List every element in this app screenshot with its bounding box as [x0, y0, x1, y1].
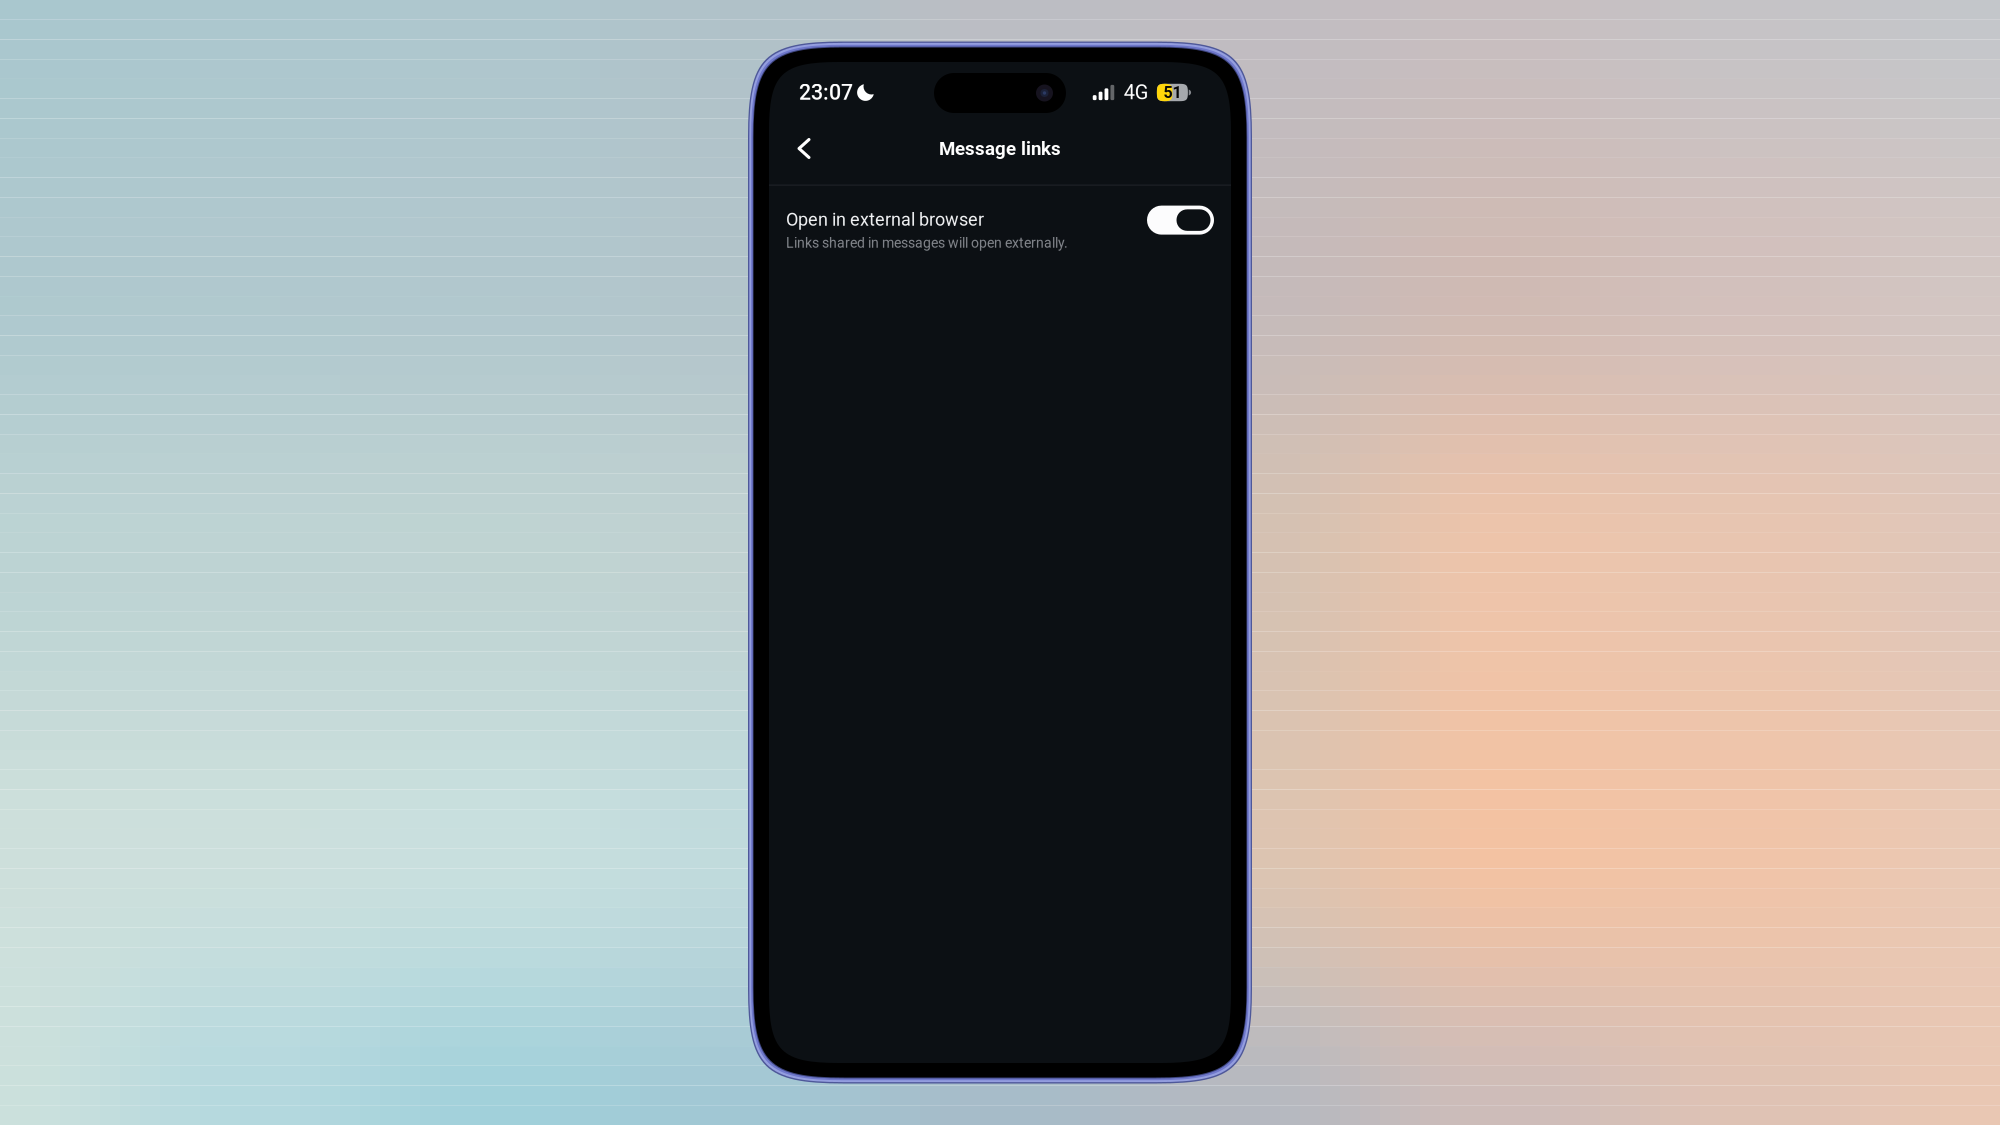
staticText: 4G — [1124, 81, 1149, 104]
staticText: Links shared in messages will open exter… — [786, 235, 1068, 251]
button[interactable]: Back — [783, 126, 825, 170]
button[interactable]: Open in external browser — [769, 186, 1231, 269]
staticText: Message links — [939, 138, 1061, 159]
staticText: 23:07 — [799, 80, 853, 105]
staticText: Open in external browser — [786, 209, 984, 230]
staticText: 51 — [1163, 83, 1181, 102]
